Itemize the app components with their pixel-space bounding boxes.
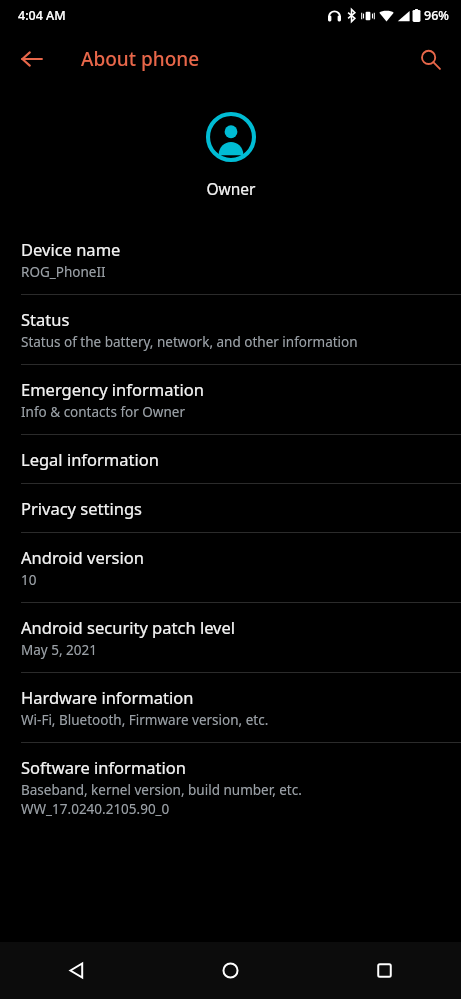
- button[interactable]: Status: [0, 295, 461, 364]
- staticText: Hardware information: [21, 686, 194, 708]
- button[interactable]: Owner account: [204, 110, 258, 164]
- button[interactable]: Back: [10, 37, 54, 81]
- staticText: Owner: [206, 178, 256, 199]
- button[interactable]: Legal information: [0, 435, 461, 483]
- staticText: Info & contacts for Owner: [21, 403, 185, 421]
- staticText: Status of the battery, network, and othe…: [21, 333, 358, 351]
- button[interactable]: Android security patch level: [0, 603, 461, 672]
- staticText: Legal information: [21, 448, 159, 470]
- button[interactable]: Android version: [0, 533, 461, 602]
- staticText: About phone: [81, 46, 200, 72]
- staticText: ROG_PhoneII: [21, 263, 106, 281]
- staticText: Android version: [21, 546, 144, 568]
- staticText: Privacy settings: [21, 497, 142, 519]
- button[interactable]: Device name: [0, 225, 461, 294]
- staticText: May 5, 2021: [21, 641, 97, 659]
- button[interactable]: Software information: [0, 743, 461, 831]
- staticText: Status: [21, 308, 70, 330]
- button[interactable]: Back: [0, 942, 153, 999]
- button[interactable]: Search: [408, 37, 452, 81]
- staticText: 96%: [424, 7, 449, 24]
- staticText: Emergency information: [21, 378, 204, 400]
- staticText: Device name: [21, 238, 121, 260]
- staticText: WW_17.0240.2105.90_0: [21, 800, 170, 818]
- staticText: Wi-Fi, Bluetooth, Firmware version, etc.: [21, 711, 269, 729]
- staticText: 4:04 AM: [18, 7, 66, 24]
- button[interactable]: Home: [153, 942, 307, 999]
- staticText: Software information: [21, 756, 186, 778]
- staticText: 10: [21, 571, 37, 589]
- staticText: Android security patch level: [21, 616, 236, 638]
- button[interactable]: Hardware information: [0, 673, 461, 742]
- staticText: Baseband, kernel version, build number, …: [21, 781, 302, 799]
- button[interactable]: Emergency information: [0, 365, 461, 434]
- button[interactable]: Recent apps: [307, 942, 461, 999]
- button[interactable]: Privacy settings: [0, 484, 461, 532]
